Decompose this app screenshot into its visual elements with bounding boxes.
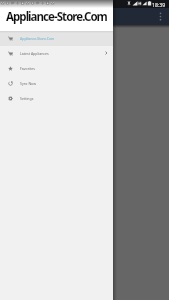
staticText: 18:39 bbox=[152, 1, 166, 8]
button[interactable]: Appliance-Store.Com bbox=[0, 31, 113, 46]
staticText: Appliance-Store.Com bbox=[20, 36, 55, 41]
button[interactable]: Favorites bbox=[0, 61, 113, 76]
button[interactable]: More options bbox=[155, 11, 166, 22]
button[interactable]: Settings bbox=[0, 91, 113, 106]
staticText: Latest Appliances bbox=[20, 51, 49, 56]
staticText: Sync Now bbox=[20, 81, 36, 86]
button[interactable]: Sync Now bbox=[0, 76, 113, 91]
button[interactable]: Latest Appliances bbox=[0, 46, 113, 61]
staticText: Appliance-Store.Com bbox=[6, 9, 107, 25]
staticText: Favorites bbox=[20, 66, 35, 71]
staticText: Settings bbox=[20, 96, 34, 101]
